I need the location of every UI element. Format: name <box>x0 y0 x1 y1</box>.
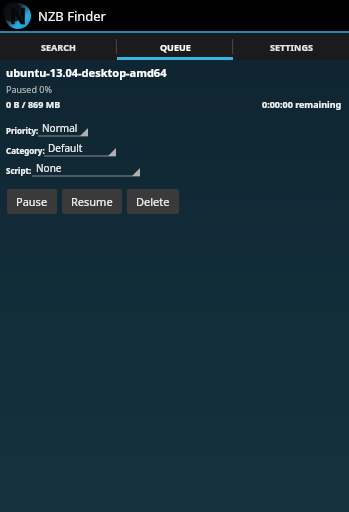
staticText: Paused 0% <box>6 83 52 95</box>
button[interactable]: Pause <box>7 189 57 214</box>
staticText: Category: <box>6 145 45 156</box>
button[interactable]: Category: <box>0 139 349 159</box>
staticText: SEARCH <box>41 41 76 53</box>
button[interactable]: QUEUE <box>117 33 233 60</box>
staticText: Resume <box>71 194 113 209</box>
button[interactable]: SETTINGS <box>233 33 349 60</box>
button[interactable]: Script: <box>0 159 349 179</box>
staticText: Delete <box>136 194 170 209</box>
staticText: NZB Finder <box>38 7 106 25</box>
button[interactable]: Resume <box>62 189 122 214</box>
staticText: ubuntu-13.04-desktop-amd64 <box>6 65 167 80</box>
button[interactable]: SEARCH <box>0 33 117 60</box>
button[interactable]: Delete <box>127 189 179 214</box>
staticText: Priority: <box>6 125 39 136</box>
button[interactable]: Priority: <box>0 119 349 139</box>
staticText: Pause <box>16 194 48 209</box>
staticText: Script: <box>6 165 32 176</box>
staticText: SETTINGS <box>270 41 313 53</box>
staticText: 0 B / 869 MB <box>6 98 61 110</box>
staticText: Default <box>48 141 83 155</box>
staticText: QUEUE <box>160 41 191 53</box>
staticText: 0:00:00 remaining <box>262 98 342 110</box>
staticText: None <box>36 161 62 175</box>
staticText: Normal <box>42 121 78 135</box>
